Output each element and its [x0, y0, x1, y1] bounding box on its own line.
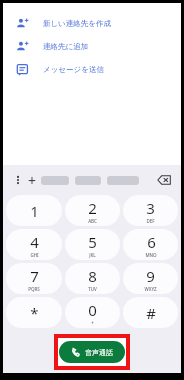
staticText: 連絡先に追加	[43, 42, 89, 51]
staticText: メッセージを送信	[43, 65, 104, 74]
button[interactable]: Backspace	[155, 171, 173, 189]
staticText: DEF	[146, 218, 155, 224]
staticText: +	[28, 171, 37, 190]
button[interactable]: 5	[65, 229, 120, 260]
staticText: 5	[88, 232, 97, 252]
button[interactable]: 音声通話	[59, 341, 125, 363]
staticText: WXYZ	[144, 286, 157, 292]
staticText: 4	[30, 232, 39, 252]
button[interactable]: 9	[123, 263, 178, 294]
button[interactable]: 連絡先に追加	[3, 35, 181, 58]
staticText: ABC	[88, 218, 97, 224]
button[interactable]: 1	[6, 195, 62, 226]
staticText: *	[30, 303, 39, 323]
staticText: 2	[88, 198, 97, 218]
staticText: 1	[30, 201, 39, 221]
button[interactable]: メッセージを送信	[3, 58, 181, 81]
staticText: TUV	[88, 286, 97, 292]
staticText: 7	[30, 266, 39, 286]
staticText: 3	[146, 198, 155, 218]
staticText: JKL	[89, 252, 96, 258]
staticText: 9	[146, 266, 155, 286]
button[interactable]: 3	[123, 195, 178, 226]
button[interactable]: 新しい連絡先を作成	[3, 12, 181, 35]
staticText: 新しい連絡先を作成	[43, 19, 112, 28]
staticText: #	[146, 303, 156, 323]
button[interactable]: 4	[6, 229, 62, 260]
staticText: 0	[88, 300, 97, 320]
button[interactable]: *	[6, 297, 62, 328]
button[interactable]: More options	[11, 173, 25, 187]
staticText: 音声通話	[85, 348, 113, 357]
staticText: PQRS	[28, 286, 40, 292]
button[interactable]: 8	[65, 263, 120, 294]
staticText: 8	[88, 266, 97, 286]
staticText: +	[91, 320, 94, 326]
button[interactable]: 7	[6, 263, 62, 294]
staticText: 6	[147, 232, 156, 252]
button[interactable]: #	[123, 297, 178, 328]
staticText: MNO	[145, 252, 157, 258]
button[interactable]: 2	[65, 195, 120, 226]
button[interactable]: 6	[123, 229, 178, 260]
button[interactable]: 0	[65, 297, 120, 328]
staticText: GHI	[30, 252, 39, 258]
